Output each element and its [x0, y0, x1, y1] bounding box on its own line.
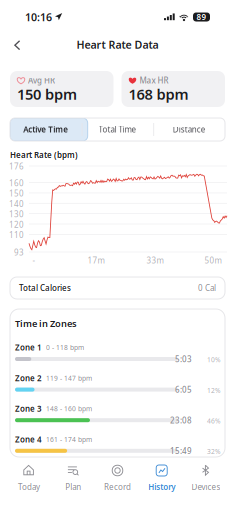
staticText: 33m	[146, 255, 163, 266]
button[interactable]: Total Time	[82, 118, 153, 141]
staticText: Max HR	[139, 75, 168, 86]
staticText: 32%	[207, 447, 221, 456]
staticText: 10%	[207, 355, 221, 364]
staticText: 161 - 174 bpm	[46, 435, 92, 444]
staticText: History	[148, 482, 175, 492]
staticText: 12%	[207, 386, 221, 395]
staticText: 10:16	[25, 10, 52, 24]
button[interactable]: Plan	[51, 463, 95, 493]
staticText: Record	[104, 482, 131, 492]
staticText: Distance	[173, 124, 206, 135]
staticText: 46%	[207, 416, 221, 425]
staticText: Zone 2	[15, 373, 42, 383]
button[interactable]: History	[140, 463, 184, 493]
staticText: 15:49	[170, 446, 192, 456]
staticText: 176	[9, 161, 24, 172]
button[interactable]: Today	[7, 463, 51, 493]
staticText: 6:05	[175, 384, 192, 395]
staticText: 89	[196, 12, 206, 22]
button[interactable]: Distance	[153, 118, 225, 141]
staticText: Zone 1	[15, 342, 42, 353]
staticText: Plan	[65, 482, 81, 492]
staticText: Active Time	[23, 124, 68, 135]
staticText: Zone 4	[15, 434, 42, 445]
staticText: 5:03	[175, 354, 192, 364]
staticText: 110	[9, 230, 24, 240]
staticText: Total Calories	[19, 283, 71, 293]
staticText: Heart Rate Data	[76, 37, 158, 52]
staticText: 23:08	[170, 415, 192, 426]
staticText: 119 - 147 bpm	[46, 374, 92, 383]
staticText: 168 bpm	[128, 84, 188, 104]
staticText: 50m	[204, 255, 221, 266]
staticText: 130	[9, 209, 24, 219]
staticText: Zone 3	[15, 403, 42, 414]
staticText: 0 Cal	[198, 283, 216, 293]
staticText: 148 - 160 bpm	[46, 404, 92, 413]
staticText: Heart Rate (bpm)	[10, 150, 78, 160]
staticText: Today	[18, 482, 40, 492]
button[interactable]: Active Time	[10, 118, 82, 141]
staticText: 150	[9, 188, 24, 199]
staticText: Total Time	[98, 124, 136, 135]
staticText: Devices	[191, 482, 220, 492]
staticText: 150 bpm	[17, 84, 77, 104]
staticText: Avg HR	[28, 75, 55, 86]
staticText: -	[32, 255, 35, 266]
staticText: 0 - 118 bpm	[46, 343, 84, 352]
staticText: 160	[9, 178, 24, 188]
staticText: 17m	[87, 255, 104, 266]
staticText: 120	[9, 219, 24, 230]
button[interactable]: Back	[7, 35, 28, 56]
staticText: Time in Zones	[15, 317, 77, 330]
button[interactable]: Devices	[184, 463, 228, 493]
staticText: 140	[9, 198, 24, 209]
button[interactable]: Record	[95, 463, 140, 493]
staticText: 93	[14, 247, 24, 258]
